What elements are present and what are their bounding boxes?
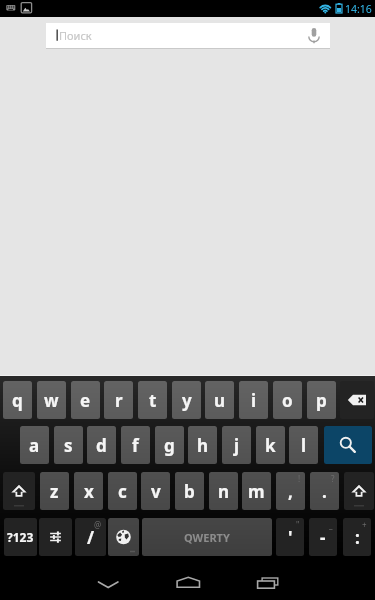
button[interactable]: p — [307, 381, 336, 419]
staticText: ! — [298, 473, 301, 484]
button[interactable]: , — [276, 472, 305, 510]
button[interactable]: Settings — [39, 518, 72, 556]
staticText: n — [218, 480, 230, 503]
staticText: + — [362, 519, 367, 530]
staticText: i — [251, 389, 257, 412]
staticText: p — [316, 389, 327, 412]
staticText: , — [288, 480, 293, 503]
button[interactable]: t — [138, 381, 167, 419]
button[interactable]: h — [188, 426, 217, 464]
staticText: QWERTY — [184, 530, 230, 545]
staticText: y — [182, 389, 192, 412]
button[interactable]: : — [343, 518, 371, 556]
button[interactable]: Поиск — [46, 23, 330, 48]
button[interactable]: Home — [158, 557, 218, 600]
button[interactable]: w — [37, 381, 66, 419]
staticText: q — [12, 389, 23, 412]
button[interactable]: ' — [276, 518, 304, 556]
staticText: r — [115, 389, 123, 412]
staticText: e — [80, 389, 91, 412]
staticText: s — [64, 434, 73, 457]
staticText: w — [44, 389, 59, 412]
staticText: " — [296, 519, 300, 530]
button[interactable]: f — [121, 426, 150, 464]
staticText: z — [50, 480, 59, 503]
button[interactable]: r — [104, 381, 133, 419]
staticText: ?123 — [7, 529, 34, 545]
button[interactable]: u — [205, 381, 234, 419]
button[interactable]: e — [71, 381, 100, 419]
staticText: k — [265, 434, 276, 457]
staticText: l — [301, 434, 307, 457]
button[interactable]: Change language — [108, 518, 139, 556]
button[interactable]: k — [256, 426, 285, 464]
staticText: ' — [288, 526, 293, 549]
button[interactable]: Shift — [3, 472, 35, 510]
button[interactable]: d — [87, 426, 116, 464]
button[interactable]: n — [209, 472, 238, 510]
button[interactable]: Close keyboard — [78, 557, 138, 600]
button[interactable]: v — [141, 472, 170, 510]
button[interactable]: i — [239, 381, 268, 419]
staticText: t — [149, 389, 157, 412]
staticText: m — [248, 480, 265, 503]
button[interactable]: q — [3, 381, 32, 419]
staticText: v — [151, 480, 161, 503]
staticText: : — [355, 526, 360, 549]
staticText: a — [29, 434, 40, 457]
button[interactable]: y — [172, 381, 201, 419]
button[interactable]: QWERTY — [142, 518, 272, 556]
staticText: ? — [331, 473, 335, 484]
button[interactable]: / — [75, 518, 106, 556]
button[interactable]: Voice search — [298, 23, 330, 48]
button[interactable]: x — [74, 472, 103, 510]
staticText: h — [197, 434, 209, 457]
staticText: . — [322, 480, 327, 503]
button[interactable]: g — [155, 426, 184, 464]
staticText: f — [132, 434, 139, 457]
button[interactable]: Shift — [344, 472, 374, 510]
staticText: b — [184, 480, 195, 503]
button[interactable]: c — [108, 472, 137, 510]
button[interactable]: o — [273, 381, 302, 419]
button[interactable]: m — [242, 472, 271, 510]
staticText: x — [84, 480, 94, 503]
staticText: o — [282, 389, 293, 412]
staticText: u — [214, 389, 226, 412]
button[interactable]: l — [289, 426, 318, 464]
staticText: g — [164, 434, 175, 457]
staticText: / — [87, 526, 95, 549]
button[interactable]: Delete — [340, 381, 374, 419]
button[interactable]: s — [54, 426, 83, 464]
staticText: 14:16 — [345, 2, 372, 16]
staticText: @ — [94, 519, 102, 530]
button[interactable]: Search — [324, 426, 372, 464]
staticText: Поиск — [59, 28, 92, 43]
staticText: j — [234, 434, 240, 457]
button[interactable]: a — [20, 426, 49, 464]
staticText: _ — [329, 519, 333, 530]
button[interactable]: Recent apps — [236, 557, 296, 600]
button[interactable]: j — [222, 426, 251, 464]
staticText: d — [96, 434, 107, 457]
button[interactable]: . — [310, 472, 339, 510]
button[interactable]: - — [309, 518, 337, 556]
button[interactable]: b — [175, 472, 204, 510]
staticText: c — [118, 480, 127, 503]
button[interactable]: z — [40, 472, 69, 510]
staticText: - — [320, 526, 326, 549]
button[interactable]: ?123 — [4, 518, 37, 556]
